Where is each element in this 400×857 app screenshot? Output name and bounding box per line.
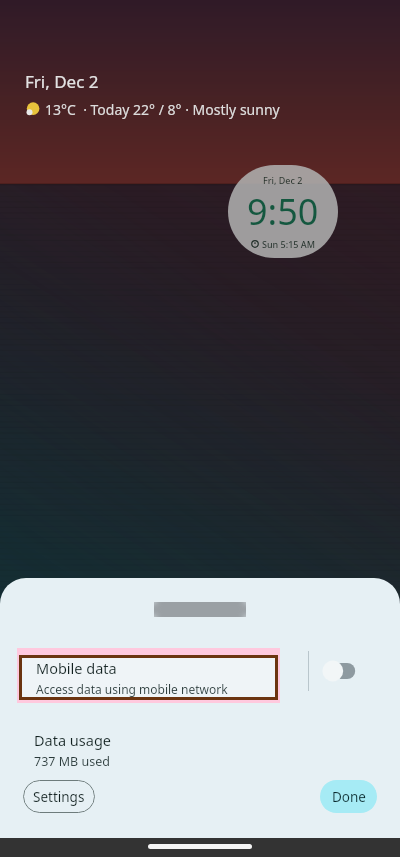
button[interactable]: Done — [320, 780, 377, 813]
button[interactable]: Mobile data — [19, 655, 278, 700]
staticText: Sun 5:15 AM — [262, 238, 315, 250]
staticText: 737 MB used — [34, 753, 110, 770]
staticText: Data usage — [34, 730, 111, 750]
button[interactable]: Settings — [23, 780, 95, 813]
staticText: Access data using mobile network — [36, 681, 228, 697]
staticText: Done — [332, 788, 366, 806]
staticText: Settings — [33, 788, 85, 806]
staticText: 13°C · Today 22° / 8° · Mostly sunny — [45, 100, 280, 119]
button[interactable]: Mobile data toggle, off — [320, 658, 360, 684]
button[interactable]: Fri, Dec 2 — [228, 165, 338, 258]
staticText: 9:50 — [247, 187, 319, 236]
staticText: Fri, Dec 2 — [25, 70, 99, 93]
staticText: Fri, Dec 2 — [263, 174, 303, 186]
staticText: Mobile data — [36, 658, 117, 678]
